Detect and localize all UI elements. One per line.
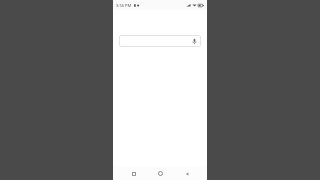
button[interactable]: Home (154, 167, 167, 180)
staticText: 3:56 PM (116, 3, 132, 8)
button[interactable]: Voice search (119, 35, 201, 47)
button[interactable]: Back (180, 167, 193, 180)
button[interactable]: Voice search (190, 37, 198, 45)
button[interactable]: Recent apps (127, 167, 140, 180)
